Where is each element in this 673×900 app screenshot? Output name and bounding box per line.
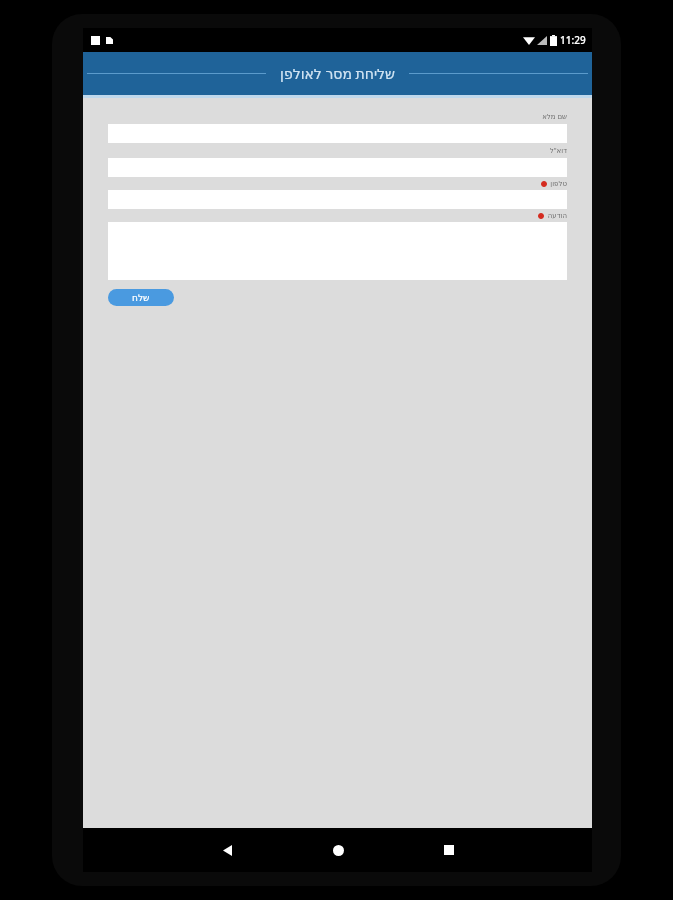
button[interactable]: Back bbox=[213, 836, 241, 864]
staticText: שליחת מסר לאולפן bbox=[280, 64, 395, 83]
staticText: שם מלא bbox=[542, 112, 567, 122]
staticText: 11:29 bbox=[560, 33, 586, 47]
button[interactable]: Recent apps bbox=[435, 836, 463, 864]
button[interactable]: שלח bbox=[108, 289, 174, 306]
staticText: טלפון bbox=[550, 180, 567, 188]
staticText: דוא"ל bbox=[549, 146, 567, 156]
button[interactable]: Home bbox=[324, 836, 352, 864]
staticText: הודעה bbox=[547, 212, 567, 220]
staticText: שלח bbox=[132, 293, 150, 303]
